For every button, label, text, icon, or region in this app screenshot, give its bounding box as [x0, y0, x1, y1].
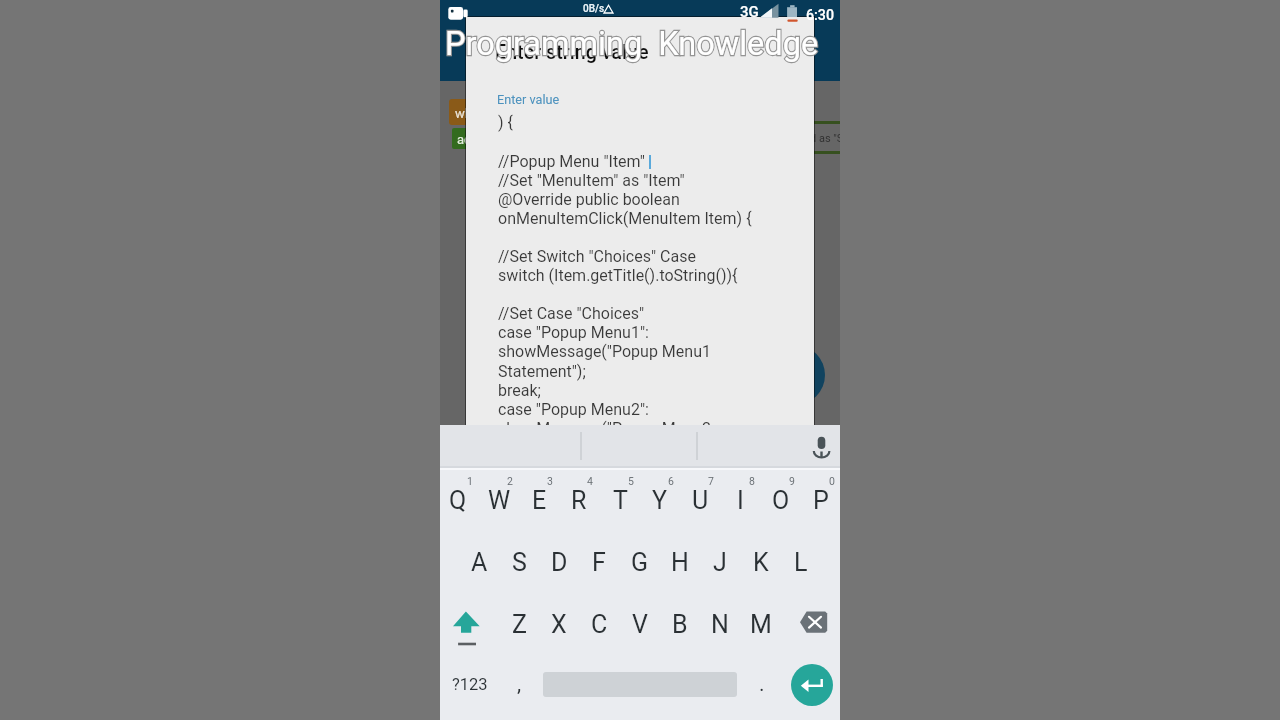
staticText: 3G [740, 3, 759, 21]
staticText: wh [455, 106, 472, 121]
staticText: Statement"); [498, 362, 586, 381]
button[interactable]: Backspace [795, 603, 837, 651]
button[interactable]: K [741, 538, 781, 586]
staticText: 1 [467, 475, 473, 487]
button[interactable]: W [479, 476, 519, 524]
staticText: ) { [498, 113, 513, 132]
staticText: //Popup Menu "Item" [498, 152, 645, 171]
staticText: S [512, 548, 527, 577]
staticText: //Set "MenuItem" as "Item" [498, 171, 685, 190]
staticText: O [772, 486, 790, 515]
staticText: ?123 [452, 675, 488, 694]
staticText: L [794, 548, 808, 577]
button[interactable]: Symbols [442, 664, 486, 706]
button[interactable]: Comma [502, 664, 538, 706]
button[interactable]: while chip [449, 99, 480, 125]
staticText: Q [449, 486, 467, 515]
button[interactable]: T [600, 476, 640, 524]
staticText: break; [498, 381, 541, 400]
staticText: B [672, 610, 688, 639]
button[interactable]: L [781, 538, 821, 586]
button[interactable]: add chip [452, 128, 480, 149]
button[interactable]: Q [440, 476, 478, 524]
button[interactable]: I [720, 476, 760, 524]
staticText: , [517, 672, 522, 697]
button[interactable]: R [559, 476, 599, 524]
staticText: case "Popup Menu1": [498, 323, 649, 342]
staticText: D [551, 548, 568, 577]
button[interactable]: B [660, 600, 700, 648]
button[interactable]: O [761, 476, 801, 524]
button[interactable]: M [741, 600, 781, 648]
button[interactable]: A [459, 538, 499, 586]
staticText: 6 [668, 475, 674, 487]
staticText: Enter string value [495, 41, 649, 64]
staticText: . [759, 672, 765, 697]
staticText: C [591, 610, 608, 639]
button[interactable]: X [539, 600, 579, 648]
staticText: 0 [829, 475, 835, 487]
staticText: 3 [547, 475, 553, 487]
button[interactable]: Z [499, 600, 539, 648]
staticText: ad [457, 132, 472, 147]
staticText: Programming Knowledge [445, 25, 819, 63]
button[interactable]: V [620, 600, 660, 648]
staticText: V [632, 610, 648, 639]
button[interactable]: P [801, 476, 840, 524]
staticText: 4 [587, 475, 593, 487]
button[interactable]: E [519, 476, 559, 524]
button[interactable]: C [579, 600, 619, 648]
staticText: Enter value [497, 92, 560, 107]
staticText: T [613, 486, 628, 515]
staticText: 2 [507, 475, 513, 487]
staticText: W [488, 486, 511, 515]
staticText: U [692, 486, 709, 515]
button[interactable]: G [620, 538, 660, 586]
staticText: showMessage("Popup Menu1 [498, 342, 711, 361]
staticText: N [711, 610, 729, 639]
staticText: switch (Item.getTitle().toString()){ [498, 266, 738, 285]
button[interactable]: Enter value text field [488, 83, 792, 425]
staticText: H [671, 548, 689, 577]
staticText: 6:30 [806, 7, 834, 24]
staticText: Z [512, 610, 527, 639]
staticText: R [571, 486, 587, 515]
button[interactable]: D [539, 538, 579, 586]
staticText: G [631, 548, 649, 577]
button[interactable]: N [700, 600, 740, 648]
staticText: 7 [708, 475, 714, 487]
staticText: 8 [749, 475, 755, 487]
staticText: P [813, 486, 829, 515]
staticText: @Override public boolean [498, 190, 680, 209]
staticText: 5 [628, 475, 634, 487]
staticText: //Set Case "Choices" [498, 304, 645, 323]
staticText: J [713, 548, 727, 577]
button[interactable]: S [499, 538, 539, 586]
staticText: X [551, 610, 567, 639]
staticText: K [753, 548, 769, 577]
staticText: M [750, 610, 772, 639]
staticText: Y [652, 486, 668, 515]
button[interactable]: Period [742, 664, 778, 706]
staticText: d as "S [810, 132, 840, 145]
button[interactable]: Enter [791, 664, 833, 706]
button[interactable]: J [700, 538, 740, 586]
staticText: E [532, 486, 547, 515]
staticText: I [737, 486, 744, 515]
staticText: //Set Switch "Choices" Case [498, 247, 696, 266]
staticText: F [592, 548, 606, 577]
staticText: A [471, 548, 488, 577]
button[interactable]: H [660, 538, 700, 586]
staticText: 0B/s [583, 3, 605, 15]
button[interactable]: Y [640, 476, 680, 524]
staticText: onMenuItemClick(MenuItem Item) { [498, 209, 752, 228]
button[interactable]: Shift [448, 603, 492, 651]
button[interactable]: U [680, 476, 720, 524]
button[interactable]: F [579, 538, 619, 586]
staticText: case "Popup Menu2": [498, 400, 649, 419]
staticText: showMessage("Popup Menu2 [498, 419, 711, 438]
staticText: Programming Knowledge [445, 25, 819, 63]
staticText: 9 [789, 475, 795, 487]
